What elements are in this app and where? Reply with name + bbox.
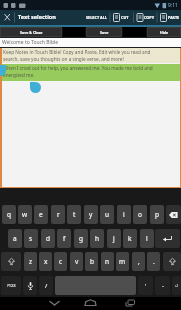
staticText: - xyxy=(162,282,164,290)
staticText: search, save you thoughts on a single ve… xyxy=(3,56,124,62)
button[interactable]: Welcome to Touch Bible xyxy=(0,38,181,48)
staticText: energized me. xyxy=(3,72,35,78)
staticText: / xyxy=(45,282,48,290)
button[interactable]: , xyxy=(132,252,145,271)
button[interactable]: w xyxy=(18,205,32,224)
button[interactable]: - xyxy=(155,276,170,295)
button[interactable] xyxy=(44,297,64,310)
button[interactable]: f xyxy=(57,229,71,248)
button[interactable]: v xyxy=(70,252,83,271)
button[interactable]: SELECT ALL xyxy=(0,10,181,25)
button[interactable]: y xyxy=(84,205,98,224)
staticText: SELECT ALL xyxy=(86,15,107,20)
button[interactable]: :-) xyxy=(172,276,181,295)
staticText: ?123 xyxy=(7,283,16,288)
staticText: z xyxy=(29,257,33,266)
button[interactable]: ?123 xyxy=(1,276,21,295)
staticText: p xyxy=(155,210,159,219)
staticText: Welcome to Touch Bible xyxy=(2,39,59,46)
button[interactable]: x xyxy=(39,252,52,271)
button[interactable]: . xyxy=(147,252,160,271)
staticText: When I cried out for help, you answered … xyxy=(3,65,153,71)
button[interactable]: r xyxy=(51,205,65,224)
staticText: :-) xyxy=(175,284,178,288)
button[interactable]: m xyxy=(116,252,129,271)
button[interactable]: a xyxy=(8,229,22,248)
staticText: f xyxy=(63,234,66,243)
button[interactable]: b xyxy=(85,252,98,271)
button[interactable] xyxy=(23,276,37,295)
staticText: Save & Close xyxy=(20,30,43,35)
button[interactable] xyxy=(1,252,21,271)
staticText: k xyxy=(128,234,132,243)
staticText: l xyxy=(146,234,148,243)
staticText: y xyxy=(89,210,93,219)
button[interactable] xyxy=(135,10,157,25)
staticText: s xyxy=(29,234,33,243)
button[interactable] xyxy=(155,229,180,248)
staticText: b xyxy=(90,257,94,266)
staticText: , xyxy=(138,257,140,266)
staticText: u xyxy=(105,210,110,219)
button[interactable]: s xyxy=(24,229,38,248)
button[interactable] xyxy=(163,252,181,271)
button[interactable] xyxy=(85,10,110,25)
button[interactable] xyxy=(80,297,100,310)
button[interactable] xyxy=(0,10,15,25)
button[interactable]: g xyxy=(74,229,88,248)
staticText: d xyxy=(46,234,50,243)
staticText: PASTE xyxy=(168,15,180,20)
button[interactable] xyxy=(111,10,133,25)
button[interactable] xyxy=(120,297,140,310)
button[interactable]: k xyxy=(123,229,137,248)
staticText: CUT xyxy=(121,15,129,20)
button[interactable]: q xyxy=(2,205,16,224)
button[interactable] xyxy=(158,10,181,25)
staticText: i xyxy=(123,210,125,219)
staticText: Save xyxy=(100,30,109,35)
staticText: Text selection xyxy=(18,13,56,20)
button[interactable]: o xyxy=(133,205,147,224)
button[interactable]: h xyxy=(90,229,104,248)
staticText: t xyxy=(73,210,76,219)
button[interactable] xyxy=(166,205,181,224)
staticText: j xyxy=(113,234,115,243)
button[interactable]: u xyxy=(100,205,114,224)
staticText: 9:11 xyxy=(168,2,178,9)
staticText: ' xyxy=(145,282,147,290)
staticText: v xyxy=(75,257,79,266)
staticText: e xyxy=(39,210,43,219)
button[interactable]: Save & Close xyxy=(0,27,62,37)
staticText: a xyxy=(13,234,17,243)
staticText: c xyxy=(59,257,63,266)
staticText: x xyxy=(44,257,48,266)
button[interactable]: l xyxy=(140,229,154,248)
button[interactable]: Save xyxy=(86,27,122,37)
staticText: . xyxy=(153,257,155,266)
staticText: w xyxy=(22,210,28,219)
button[interactable]: i xyxy=(117,205,131,224)
staticText: o xyxy=(138,210,142,219)
button[interactable]: d xyxy=(41,229,55,248)
staticText: q xyxy=(7,210,11,219)
button[interactable]: n xyxy=(101,252,114,271)
staticText: n xyxy=(105,257,110,266)
button[interactable]: ' xyxy=(138,276,153,295)
staticText: Keep Notes in Touch Bible! Copy and Past… xyxy=(3,49,151,55)
button[interactable]: p xyxy=(150,205,164,224)
staticText: r xyxy=(57,210,60,219)
button[interactable]: j xyxy=(107,229,121,248)
button[interactable]: Keep Notes in Touch Bible! Copy and Past… xyxy=(2,48,180,187)
staticText: h xyxy=(95,234,100,243)
button[interactable]: Hide xyxy=(147,27,181,37)
staticText: g xyxy=(79,234,83,243)
button[interactable]: z xyxy=(24,252,37,271)
staticText: Hide xyxy=(160,30,169,35)
button[interactable]: t xyxy=(67,205,81,224)
button[interactable]: c xyxy=(54,252,67,271)
button[interactable]: / xyxy=(39,276,53,295)
staticText: COPY xyxy=(144,15,155,20)
staticText: m xyxy=(119,257,126,266)
button[interactable]: e xyxy=(34,205,48,224)
